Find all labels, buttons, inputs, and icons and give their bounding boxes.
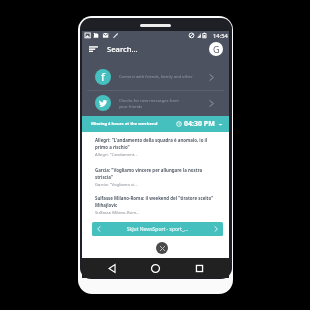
staticText: Garcia: "Vogliamo vi... <box>95 182 138 188</box>
button[interactable]: Allegri: "L'andamento della squadra è an… <box>95 137 216 167</box>
button[interactable]: Google search <box>209 42 223 56</box>
staticText: 14:54 <box>213 32 228 40</box>
staticText: Sulfasse Milano-Rom... <box>95 210 140 216</box>
staticText: Allegri: "L'andament... <box>95 152 138 158</box>
staticText: Sulfasse Milano-Roma: il weekend del "ti… <box>95 195 216 208</box>
button[interactable]: f <box>82 64 229 90</box>
button[interactable]: Home <box>147 260 163 276</box>
staticText: Connect with friends, family and other <box>119 74 209 80</box>
button[interactable]: Back <box>104 260 120 276</box>
staticText: G <box>213 43 220 55</box>
button[interactable]: Garcia: "Vogliamo vincere per allungare … <box>95 167 216 195</box>
staticText: Checks for new messages from your friend… <box>119 98 209 109</box>
button[interactable]: Recents <box>191 260 207 276</box>
button[interactable]: Skjut NewsSport - sport_... <box>92 222 223 236</box>
staticText: Search... <box>107 44 138 54</box>
staticText: 04:30 PM <box>184 119 215 129</box>
staticText: Allegri: "L'andamento della squadra è an… <box>95 137 216 150</box>
staticText: Garcia: "Vogliamo vincere per allungare … <box>95 167 216 180</box>
staticText: f <box>101 69 105 85</box>
button[interactable]: Close <box>156 242 168 254</box>
staticText: Missing 4 hours at the weekend <box>91 121 158 127</box>
button[interactable]: Menu <box>86 42 100 56</box>
button[interactable]: Checks for new messages from your friend… <box>82 90 229 116</box>
button[interactable]: Sulfasse Milano-Roma: il weekend del "ti… <box>95 195 216 216</box>
staticText: Skjut NewsSport - sport_... <box>101 226 214 233</box>
